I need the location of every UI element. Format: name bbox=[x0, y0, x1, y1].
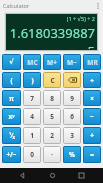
button[interactable]: Home bbox=[44, 168, 60, 183]
staticText: · bbox=[51, 150, 53, 159]
staticText: − bbox=[90, 112, 94, 121]
button[interactable]: Recents bbox=[73, 168, 89, 183]
staticText: 4 bbox=[30, 112, 34, 121]
button[interactable]: Multiply bbox=[83, 90, 101, 106]
staticText: MC bbox=[27, 58, 38, 67]
button[interactable]: Reciprocal bbox=[2, 127, 21, 144]
staticText: 5 bbox=[50, 112, 54, 121]
staticText: +/− bbox=[6, 150, 17, 159]
staticText: xʸ bbox=[8, 112, 15, 121]
staticText: 1.61803398875 bbox=[8, 24, 95, 49]
staticText: ¹⁄ₓ bbox=[9, 131, 15, 140]
button[interactable]: Plus bbox=[83, 127, 101, 144]
staticText: M+ bbox=[47, 58, 57, 67]
button[interactable]: 3 bbox=[63, 127, 81, 144]
staticText: + bbox=[90, 131, 94, 140]
staticText: 8 bbox=[50, 94, 54, 103]
staticText: √ bbox=[9, 58, 14, 66]
button[interactable]: More options bbox=[93, 0, 103, 11]
staticText: M− bbox=[67, 58, 77, 67]
button[interactable]: Divide bbox=[83, 72, 101, 88]
button[interactable]: C bbox=[43, 72, 61, 88]
button[interactable]: 7 bbox=[23, 90, 41, 106]
button[interactable]: Square root bbox=[2, 54, 21, 70]
button[interactable]: 9 bbox=[63, 90, 81, 106]
button[interactable]: M− bbox=[63, 54, 81, 70]
staticText: 2 bbox=[50, 131, 54, 140]
staticText: ( bbox=[10, 76, 13, 85]
staticText: (1 + √5) ÷ 2 bbox=[66, 15, 95, 22]
staticText: 9 bbox=[70, 94, 74, 103]
staticText: ÷ bbox=[90, 76, 94, 85]
button[interactable]: ) bbox=[23, 72, 41, 88]
button[interactable]: M+ bbox=[43, 54, 61, 70]
button[interactable]: Percent bbox=[63, 146, 81, 163]
button[interactable]: 8 bbox=[43, 90, 61, 106]
button[interactable]: ( bbox=[2, 72, 21, 88]
button[interactable]: MR bbox=[83, 54, 101, 70]
button[interactable]: Backspace bbox=[63, 72, 81, 88]
button[interactable]: Power bbox=[2, 108, 21, 125]
staticText: × bbox=[90, 94, 94, 103]
button[interactable]: Equals bbox=[83, 146, 101, 163]
staticText: C bbox=[50, 76, 55, 85]
staticText: MR bbox=[87, 58, 98, 67]
button[interactable]: Minus bbox=[83, 108, 101, 125]
button[interactable]: 0 bbox=[23, 146, 41, 163]
button[interactable]: · bbox=[43, 146, 61, 163]
staticText: % bbox=[69, 150, 75, 159]
button[interactable]: 1 bbox=[23, 127, 41, 144]
staticText: 0 bbox=[30, 150, 34, 159]
button[interactable]: 6 bbox=[63, 108, 81, 125]
button[interactable]: 4 bbox=[23, 108, 41, 125]
staticText: 7 bbox=[30, 94, 34, 103]
button[interactable]: Back bbox=[14, 168, 30, 183]
button[interactable]: Pi bbox=[2, 90, 21, 106]
staticText: 3 bbox=[70, 131, 74, 140]
staticText: ) bbox=[31, 76, 34, 85]
button[interactable]: 5 bbox=[43, 108, 61, 125]
staticText: π bbox=[9, 94, 14, 103]
button[interactable]: Sign bbox=[2, 146, 21, 163]
button[interactable]: 2 bbox=[43, 127, 61, 144]
staticText: 6 bbox=[70, 112, 74, 121]
button[interactable]: MC bbox=[23, 54, 41, 70]
staticText: Calculator bbox=[3, 2, 30, 9]
staticText: 1 bbox=[30, 131, 34, 140]
staticText: = bbox=[90, 150, 94, 159]
